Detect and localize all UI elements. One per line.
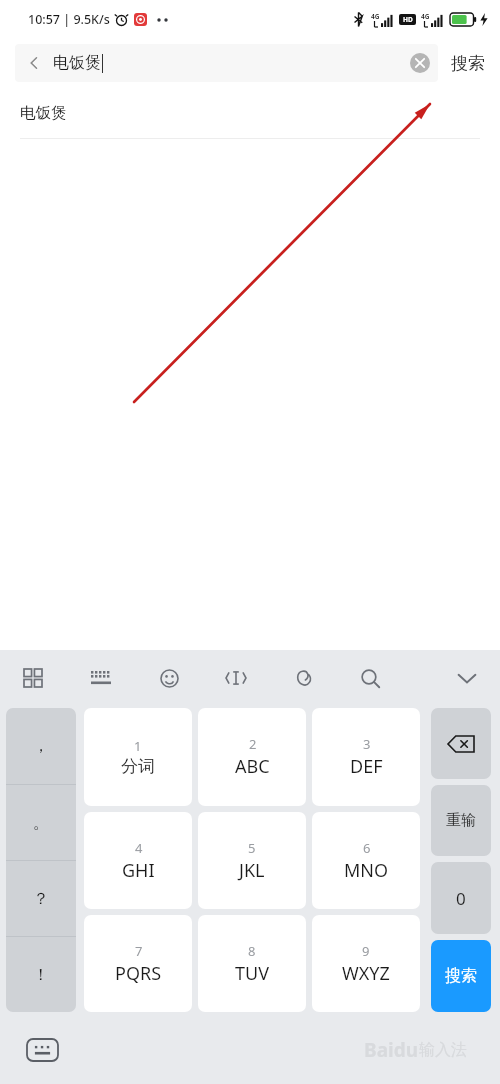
button[interactable]: 2 xyxy=(198,708,306,806)
button[interactable]: Switch keyboard xyxy=(22,1030,62,1070)
staticText: Baidu xyxy=(364,1037,419,1063)
button[interactable]: 9 xyxy=(312,915,420,1012)
staticText: 0 xyxy=(456,887,466,910)
staticText: 7 xyxy=(135,942,143,960)
staticText: 。 xyxy=(33,813,49,833)
button[interactable]: 。 xyxy=(6,785,76,860)
staticText: 6 xyxy=(363,839,371,857)
staticText: WXYZ xyxy=(342,961,390,986)
button[interactable]: ， xyxy=(6,708,76,784)
button[interactable]: Back xyxy=(15,44,53,82)
staticText: GHI xyxy=(122,858,155,883)
button[interactable]: 电饭煲 xyxy=(0,88,500,138)
button[interactable]: 8 xyxy=(198,915,306,1012)
button[interactable]: Keyboard layout xyxy=(84,661,118,695)
staticText: 4 xyxy=(135,839,143,857)
staticText: 4G xyxy=(421,12,430,21)
staticText: ABC xyxy=(235,754,270,779)
button[interactable]: Clear xyxy=(410,53,430,73)
staticText: 2 xyxy=(249,735,257,753)
staticText: 9 xyxy=(362,942,370,960)
button[interactable]: 5 xyxy=(198,812,306,909)
button[interactable]: 0 xyxy=(431,862,491,934)
staticText: ， xyxy=(33,736,49,756)
button[interactable]: 搜索 xyxy=(451,44,485,82)
button[interactable]: Clipboard xyxy=(286,661,320,695)
staticText: MNO xyxy=(344,858,389,883)
staticText: 搜索 xyxy=(445,966,477,986)
button[interactable]: 1 xyxy=(84,708,192,806)
staticText: DEF xyxy=(350,754,383,779)
staticText: 10:57 | 9.5K/s xyxy=(28,11,110,28)
button[interactable]: ！ xyxy=(6,937,76,1012)
staticText: JKL xyxy=(239,858,265,883)
button[interactable]: 6 xyxy=(312,812,420,909)
button[interactable]: Backspace xyxy=(431,708,491,779)
button[interactable]: Edit text xyxy=(219,661,253,695)
staticText: 4G xyxy=(371,12,380,21)
staticText: 1 xyxy=(134,737,142,755)
staticText: 输入法 xyxy=(419,1040,467,1060)
staticText: ？ xyxy=(33,889,49,909)
staticText: ！ xyxy=(33,965,49,985)
button[interactable]: 重输 xyxy=(431,785,491,856)
staticText: 电饭煲 xyxy=(53,53,101,73)
button[interactable]: 3 xyxy=(312,708,420,806)
staticText: PQRS xyxy=(115,961,162,986)
staticText: 3 xyxy=(363,735,371,753)
button[interactable]: Emoji xyxy=(152,661,186,695)
button[interactable]: Hide keyboard xyxy=(450,661,484,695)
button[interactable]: 7 xyxy=(84,915,192,1012)
button[interactable]: Back xyxy=(15,44,438,82)
staticText: 电饭煲 xyxy=(20,103,67,123)
staticText: 8 xyxy=(248,942,256,960)
staticText: 搜索 xyxy=(451,53,485,74)
button[interactable]: Panel xyxy=(16,661,50,695)
button[interactable]: 搜索 xyxy=(431,940,491,1012)
staticText: 重输 xyxy=(446,811,476,830)
staticText: 分词 xyxy=(121,756,155,777)
button[interactable]: 4 xyxy=(84,812,192,909)
button[interactable]: ？ xyxy=(6,861,76,936)
button[interactable]: Search xyxy=(353,661,387,695)
staticText: TUV xyxy=(235,961,269,986)
staticText: HD xyxy=(403,15,413,24)
staticText: 5 xyxy=(248,839,256,857)
